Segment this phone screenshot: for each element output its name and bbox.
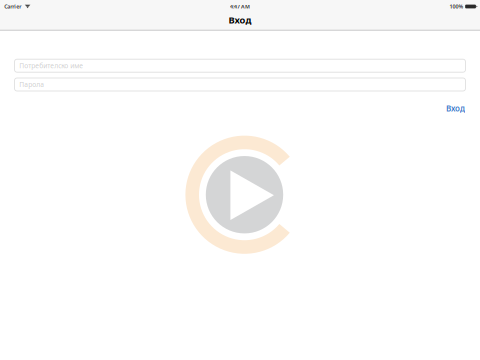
staticText: Carrier bbox=[4, 3, 21, 10]
staticText: Вход bbox=[228, 14, 251, 26]
button[interactable]: Потребителско име bbox=[14, 59, 465, 72]
staticText: Вход bbox=[446, 103, 465, 114]
button[interactable]: Вход bbox=[446, 103, 465, 114]
button[interactable]: Парола bbox=[14, 78, 465, 91]
staticText: Парола bbox=[19, 80, 44, 89]
staticText: Потребителско име bbox=[19, 61, 83, 70]
staticText: 100% bbox=[450, 3, 464, 10]
staticText: 4:47 AM bbox=[230, 3, 250, 10]
